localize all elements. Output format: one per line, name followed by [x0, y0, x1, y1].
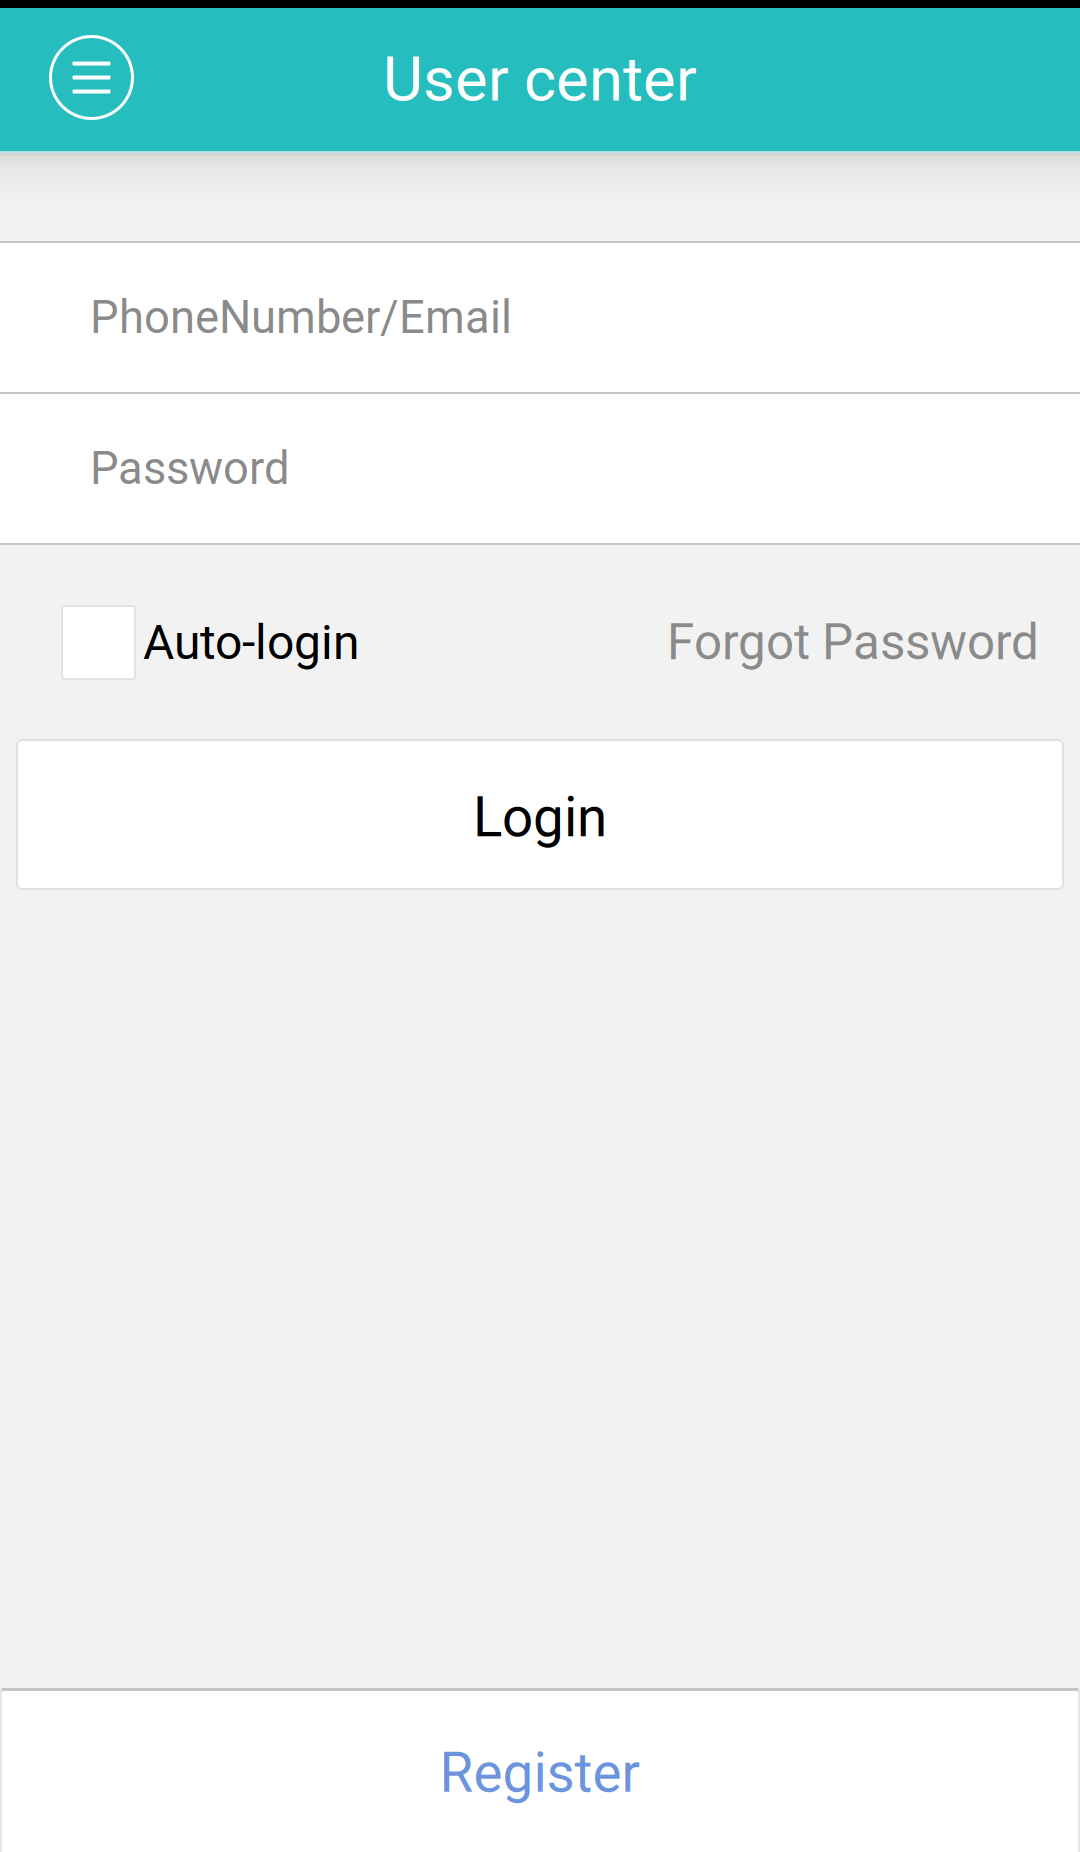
button[interactable]: Register	[0, 1688, 1080, 1852]
button[interactable]: PhoneNumber/Email	[0, 243, 1080, 392]
staticText: User center	[383, 44, 697, 115]
button[interactable]: Menu	[0, 8, 183, 151]
button[interactable]: Password	[0, 394, 1080, 543]
staticText: PhoneNumber/Email	[90, 291, 512, 344]
staticText: Login	[473, 785, 607, 850]
staticText: Password	[90, 442, 290, 495]
button[interactable]: Forgot Password	[667, 577, 1039, 707]
button[interactable]: Auto-login	[62, 577, 360, 707]
staticText: Register	[439, 1741, 640, 1805]
button[interactable]: Login	[17, 740, 1063, 889]
staticText: Forgot Password	[667, 614, 1039, 671]
staticText: Auto-login	[143, 614, 360, 671]
